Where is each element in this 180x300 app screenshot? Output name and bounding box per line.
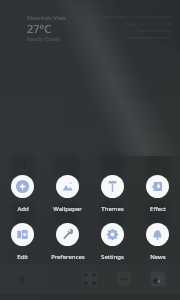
button[interactable]: Effect — [135, 175, 180, 213]
staticText: Add — [17, 205, 29, 213]
staticText: Mountain View — [27, 14, 66, 21]
staticText: Preferences — [51, 253, 85, 261]
staticText: Edit — [17, 253, 28, 261]
button[interactable]: Preferences — [45, 223, 90, 261]
button[interactable]: Wallpaper — [45, 175, 90, 213]
button[interactable]: All apps — [80, 269, 100, 289]
button[interactable]: More — [114, 269, 134, 289]
button[interactable]: News — [135, 223, 180, 261]
staticText: News — [150, 253, 166, 261]
staticText: Themes — [101, 205, 124, 213]
staticText: Settings — [101, 253, 124, 261]
staticText: Mostly Cloudy — [27, 36, 61, 43]
staticText: Wallpaper — [53, 205, 82, 213]
staticText: 27°C — [27, 21, 52, 36]
button[interactable]: Add — [0, 175, 45, 213]
button[interactable]: Themes — [90, 175, 135, 213]
button[interactable]: Settings — [90, 223, 135, 261]
button[interactable]: Camera — [148, 269, 168, 289]
staticText: Effect — [150, 205, 166, 213]
button[interactable]: Edit — [0, 223, 45, 261]
